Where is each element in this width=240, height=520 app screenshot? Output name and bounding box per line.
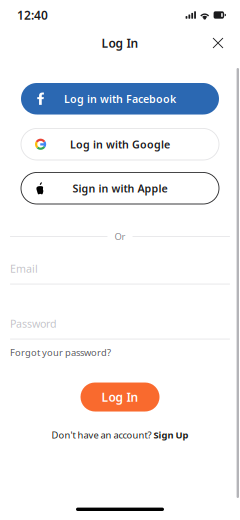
staticText: Forgot your password? bbox=[10, 346, 111, 359]
button[interactable]: Sign in with Apple bbox=[21, 172, 219, 204]
button[interactable]: Log in with Google bbox=[21, 128, 219, 160]
button[interactable]: Forgot your password? bbox=[10, 345, 230, 359]
staticText: Email bbox=[10, 261, 38, 276]
staticText: Don't have an account? Sign Up bbox=[51, 429, 188, 441]
button[interactable]: Don't have an account? Sign Up bbox=[51, 428, 188, 441]
button[interactable]: Log in with Facebook bbox=[21, 83, 219, 114]
staticText: Or bbox=[114, 230, 125, 243]
staticText: 12:40 bbox=[17, 7, 48, 23]
staticText: Log in with Facebook bbox=[64, 92, 176, 106]
staticText: Sign in with Apple bbox=[72, 181, 167, 195]
staticText: Log In bbox=[101, 35, 138, 51]
staticText: Password bbox=[10, 316, 57, 331]
button[interactable]: Log In bbox=[80, 382, 159, 411]
button[interactable]: Close bbox=[205, 30, 231, 56]
staticText: Log In bbox=[101, 389, 138, 405]
staticText: Log in with Google bbox=[70, 137, 170, 151]
